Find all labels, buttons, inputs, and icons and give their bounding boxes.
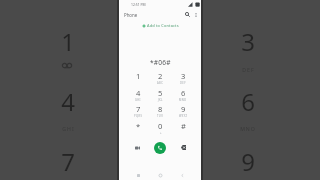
button[interactable]: 1 [127,69,149,86]
button[interactable]: More options [191,9,200,20]
button[interactable]: 7 [127,102,149,119]
staticText: DEF [180,81,186,85]
button[interactable]: Add to Contacts [119,20,201,30]
button[interactable]: Home [153,169,167,180]
button[interactable]: # [172,119,194,136]
staticText: 8 [151,145,165,178]
staticText: Phone [124,12,138,18]
staticText: ABC [157,81,164,85]
staticText: 6 [241,85,255,118]
staticText: 9 [181,104,186,114]
staticText: JKL [158,98,163,102]
staticText: MNO [179,98,187,102]
button[interactable]: Call [154,142,166,154]
staticText: PQRS [134,114,143,118]
staticText: 8 [158,104,163,114]
staticText: 0 [158,121,163,131]
staticText: 1 [61,25,75,58]
staticText: 6 [181,88,186,98]
staticText: 5 [151,85,165,118]
button[interactable]: * [127,119,149,136]
staticText: # [181,121,186,131]
staticText: 7 [61,145,75,178]
staticText: * [136,121,141,131]
staticText: 5 [158,88,163,98]
staticText: JKL [153,125,164,132]
button[interactable]: Back [175,169,189,180]
button[interactable]: 2 [149,69,171,86]
button[interactable]: 4 [127,86,149,103]
staticText: 4 [61,85,75,118]
staticText: 3 [181,71,186,81]
staticText: MNO [240,125,256,132]
staticText: GHI [135,98,141,102]
button[interactable]: 6 [172,86,194,103]
button[interactable]: Recents [131,169,145,180]
button[interactable]: 9 [172,102,194,119]
button[interactable]: 8 [149,102,171,119]
staticText: GHI [62,125,75,132]
staticText: 2 [151,25,165,58]
staticText: 4 [136,88,141,98]
staticText: 1 [136,71,141,81]
staticText: + [160,131,162,135]
staticText: WXYZ [179,114,188,118]
staticText: 9 [241,145,255,178]
staticText: DEF [242,66,255,73]
button[interactable]: 0 [149,119,171,136]
staticText: *#06# [150,58,171,67]
staticText: TUV [157,114,164,118]
button[interactable]: Search [182,9,192,20]
button[interactable]: 5 [149,86,171,103]
button[interactable]: Backspace [175,140,191,155]
staticText: 2 [158,71,163,81]
staticText: 7 [136,104,141,114]
button[interactable]: 3 [172,69,194,86]
staticText: 3 [241,25,255,58]
staticText: Add to Contacts [147,23,179,28]
button[interactable]: Video call [129,140,145,155]
staticText: 12:51 PM [131,2,146,7]
